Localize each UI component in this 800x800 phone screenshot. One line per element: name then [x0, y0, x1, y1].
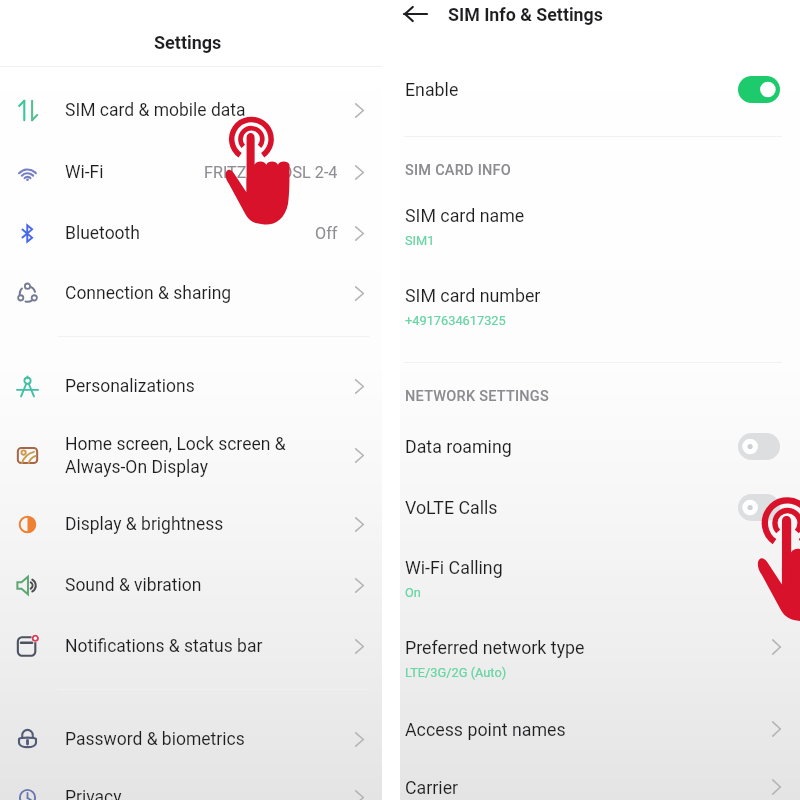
staticText: SIM card number: [405, 285, 541, 306]
staticText: Home screen, Lock screen & Always-On Dis…: [65, 434, 355, 477]
button[interactable]: Enabled toggle: [738, 76, 780, 103]
button[interactable]: Notifications & status bar: [0, 617, 382, 675]
button[interactable]: Back: [401, 0, 429, 28]
staticText: Access point names: [405, 719, 772, 740]
staticText: Notifications & status bar: [65, 636, 355, 657]
staticText: Bluetooth: [65, 223, 315, 244]
staticText: Wi-Fi: [65, 162, 204, 183]
staticText: VoLTE Calls: [405, 497, 738, 518]
button[interactable]: Wi-Fi Calling: [400, 553, 800, 603]
button[interactable]: SIM card name: [400, 201, 800, 251]
button[interactable]: Preferred network type: [400, 633, 800, 683]
button[interactable]: Data roaming: [400, 424, 800, 468]
staticText: Display & brightness: [65, 514, 355, 535]
button[interactable]: Display & brightness: [0, 495, 382, 553]
staticText: SIM1: [405, 233, 435, 248]
staticText: SIM card & mobile data: [65, 100, 355, 121]
button[interactable]: Access point names: [400, 707, 800, 751]
button[interactable]: Enable: [405, 66, 780, 112]
button[interactable]: Home screen, Lock screen & Always-On Dis…: [0, 426, 382, 484]
staticText: On: [405, 585, 421, 600]
button[interactable]: Privacy: [0, 768, 382, 800]
staticText: Off: [315, 224, 338, 243]
staticText: Sound & vibration: [65, 575, 355, 596]
button[interactable]: Wi-Fi: [0, 143, 382, 201]
button[interactable]: Bluetooth: [0, 204, 382, 262]
staticText: Enable: [405, 79, 738, 100]
staticText: Wi-Fi Calling: [405, 557, 503, 578]
button[interactable]: SIM card number: [400, 281, 800, 331]
staticText: Preferred network type: [405, 637, 585, 658]
staticText: Settings: [154, 32, 222, 53]
staticText: +4917634617325: [405, 313, 506, 328]
button[interactable]: SIM card & mobile data: [0, 81, 382, 139]
staticText: Carrier: [405, 777, 772, 798]
button[interactable]: Personalizations: [0, 357, 382, 415]
staticText: NETWORK SETTINGS: [405, 388, 549, 405]
button[interactable]: VoLTE Calls: [400, 485, 800, 529]
staticText: SIM CARD INFO: [405, 162, 512, 179]
staticText: Personalizations: [65, 376, 355, 397]
button[interactable]: Connection & sharing: [0, 264, 382, 322]
staticText: SIM card name: [405, 205, 525, 226]
staticText: LTE/3G/2G (Auto): [405, 665, 507, 680]
staticText: Connection & sharing: [65, 283, 355, 304]
staticText: FRITZ!Box DSL 2-4: [204, 163, 338, 182]
staticText: SIM Info & Settings: [448, 4, 603, 25]
staticText: Privacy: [65, 787, 355, 800]
button[interactable]: Carrier: [400, 765, 800, 800]
staticText: Data roaming: [405, 436, 738, 457]
button[interactable]: Sound & vibration: [0, 556, 382, 614]
button[interactable]: Password & biometrics: [0, 710, 382, 768]
button[interactable]: Disabled toggle: [738, 494, 780, 521]
staticText: Password & biometrics: [65, 729, 355, 750]
button[interactable]: Disabled toggle: [738, 433, 780, 460]
